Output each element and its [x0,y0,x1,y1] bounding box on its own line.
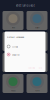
staticText: Tamil [35,89,39,92]
button[interactable]: Marathi [26,32,47,51]
staticText: Hindi [11,26,14,29]
button[interactable]: Hindi [4,42,45,50]
button[interactable]: Telugu [2,74,23,93]
button[interactable]: Hindi [2,11,23,30]
staticText: English [34,26,39,29]
staticText: Default Language [7,35,24,38]
staticText: Telugu [10,89,15,92]
button[interactable]: English [26,11,47,30]
staticText: Bengali [10,47,15,50]
staticText: CANCEL [28,66,35,69]
staticText: English [12,53,19,56]
button[interactable]: Bengali [2,32,23,51]
staticText: Select Language [15,4,34,7]
button[interactable]: Punjabi [26,53,47,72]
staticText: Hindi [12,45,18,48]
staticText: Punjabi [34,68,39,71]
button[interactable]: English [4,50,45,58]
button[interactable]: OK [38,65,43,70]
staticText: OK [39,66,42,69]
button[interactable]: CANCEL [27,65,37,70]
button[interactable]: Gujarati [2,53,23,72]
button[interactable]: Tamil [26,74,47,93]
